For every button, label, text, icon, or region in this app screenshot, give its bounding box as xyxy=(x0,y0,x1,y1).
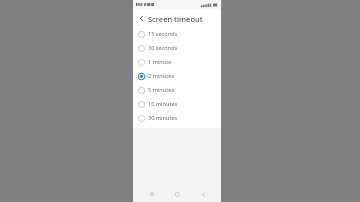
button[interactable]: 15 seconds xyxy=(133,27,221,41)
button[interactable]: 1 minute xyxy=(133,55,221,69)
staticText: 15 seconds xyxy=(148,30,178,38)
button[interactable]: 30 seconds xyxy=(133,41,221,55)
button[interactable]: Home xyxy=(170,187,184,201)
button[interactable]: 30 minutes xyxy=(133,111,221,125)
button[interactable]: 5 minutes xyxy=(133,83,221,97)
staticText: Screen timeout xyxy=(148,14,203,24)
button[interactable]: 10 minutes xyxy=(133,97,221,111)
button[interactable]: 2 minutes xyxy=(133,69,221,83)
staticText: 30 seconds xyxy=(148,44,178,52)
staticText: 1 minute xyxy=(148,58,172,66)
staticText: 2 minutes xyxy=(148,72,175,80)
staticText: 5 minutes xyxy=(148,86,175,94)
button[interactable]: Recent apps xyxy=(145,187,159,201)
button[interactable]: Navigate up xyxy=(136,13,147,24)
staticText: 30 minutes xyxy=(148,114,178,122)
staticText: 10 minutes xyxy=(148,100,178,108)
button[interactable]: Back xyxy=(196,187,210,201)
